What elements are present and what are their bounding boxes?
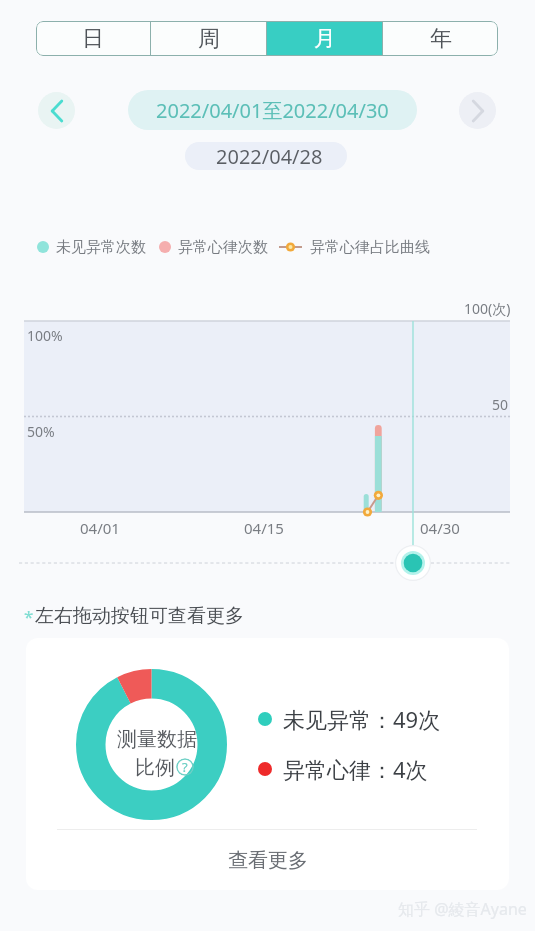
staticText: 异常心律次数	[178, 238, 268, 257]
staticText: 100(次)	[464, 299, 511, 318]
staticText: ?	[182, 758, 188, 776]
staticText: 周	[198, 25, 220, 53]
staticText: 100%	[27, 326, 63, 345]
button[interactable]: 日	[36, 21, 150, 56]
staticText: 2022/04/28	[216, 143, 323, 170]
staticText: 50	[492, 395, 509, 414]
staticText: 2022/04/01至2022/04/30	[156, 97, 389, 124]
staticText: 未见异常：49次	[283, 704, 441, 734]
button[interactable]: 月	[267, 21, 382, 56]
staticText: 04/01	[80, 518, 120, 538]
button[interactable]: Next period	[459, 92, 496, 129]
staticText: 测量数据	[117, 727, 197, 752]
button[interactable]: About measurement ratio	[176, 758, 194, 776]
staticText: 年	[430, 25, 452, 53]
button[interactable]: Previous period	[38, 92, 75, 129]
button[interactable]: 周	[151, 21, 266, 56]
staticText: 知乎 @綾音Ayane	[398, 898, 527, 920]
button[interactable]: 查看更多	[26, 830, 509, 890]
staticText: *	[24, 605, 34, 628]
staticText: 左右拖动按钮可查看更多	[35, 604, 244, 628]
staticText: 月	[314, 25, 336, 53]
button[interactable]: Drag to scrub chart	[396, 546, 430, 580]
button[interactable]: 2022/04/01至2022/04/30	[128, 90, 417, 130]
staticText: 50%	[27, 422, 55, 441]
button[interactable]: 年	[383, 21, 498, 56]
staticText: 日	[82, 25, 104, 53]
button[interactable]: 2022/04/28	[185, 142, 347, 170]
staticText: 04/15	[244, 518, 284, 538]
staticText: 异常心律：4次	[283, 754, 428, 784]
staticText: 未见异常次数	[56, 238, 146, 257]
staticText: 查看更多	[228, 848, 308, 873]
staticText: 04/30	[420, 518, 460, 538]
staticText: 比例	[135, 755, 175, 780]
staticText: 异常心律占比曲线	[310, 238, 430, 257]
